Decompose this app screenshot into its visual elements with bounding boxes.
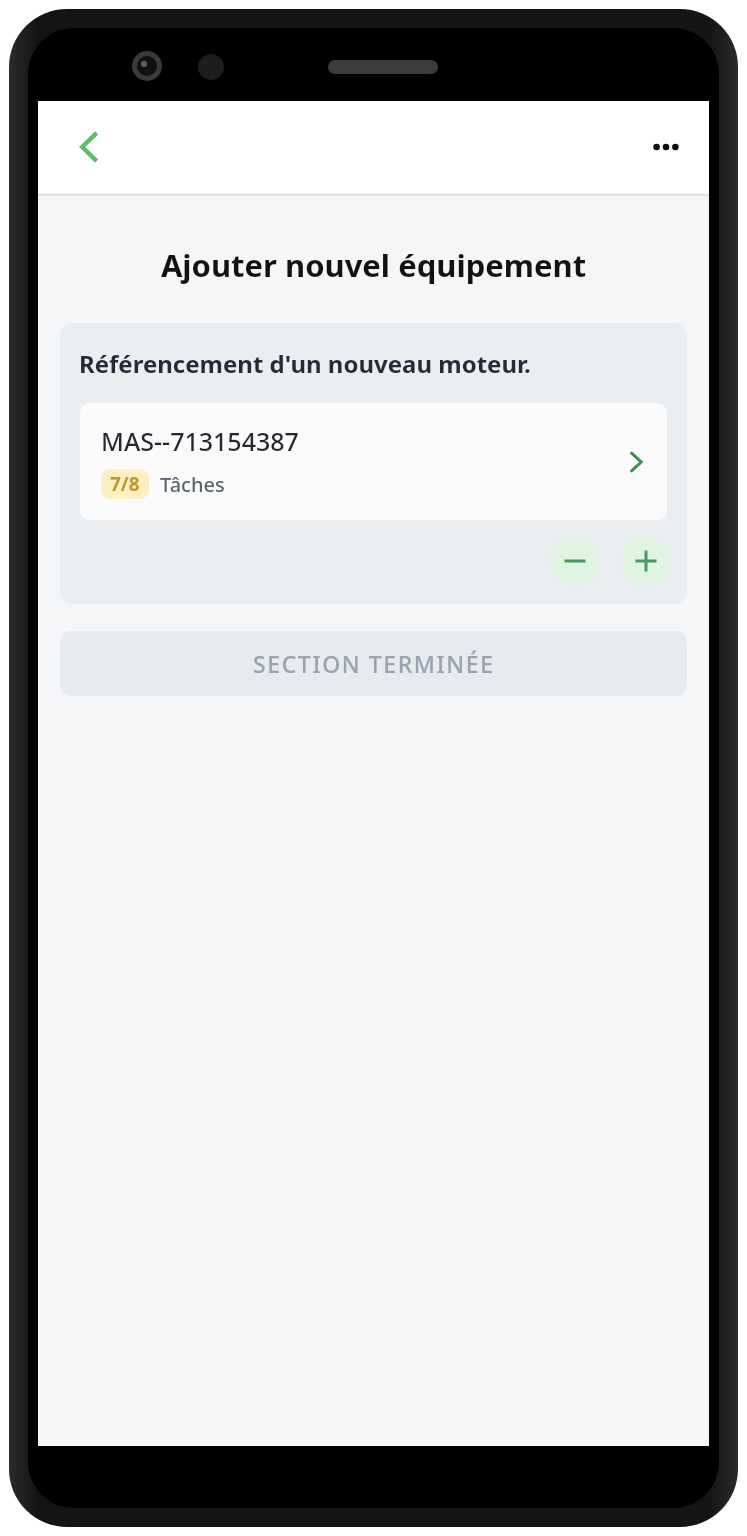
staticText: MAS--713154387	[101, 424, 299, 458]
button[interactable]: Add	[621, 536, 671, 586]
button[interactable]: Back	[58, 116, 120, 178]
button[interactable]: Remove	[550, 536, 600, 586]
button[interactable]: SECTION TERMINÉE	[60, 631, 687, 696]
staticText: Tâches	[160, 471, 225, 498]
staticText: Ajouter nouvel équipement	[38, 244, 709, 286]
staticText: SECTION TERMINÉE	[253, 648, 495, 679]
staticText: 7/8	[110, 471, 140, 497]
button[interactable]: MAS--713154387	[80, 403, 667, 520]
button[interactable]: More options	[635, 116, 697, 178]
staticText: Référencement d'un nouveau moteur.	[79, 347, 531, 380]
